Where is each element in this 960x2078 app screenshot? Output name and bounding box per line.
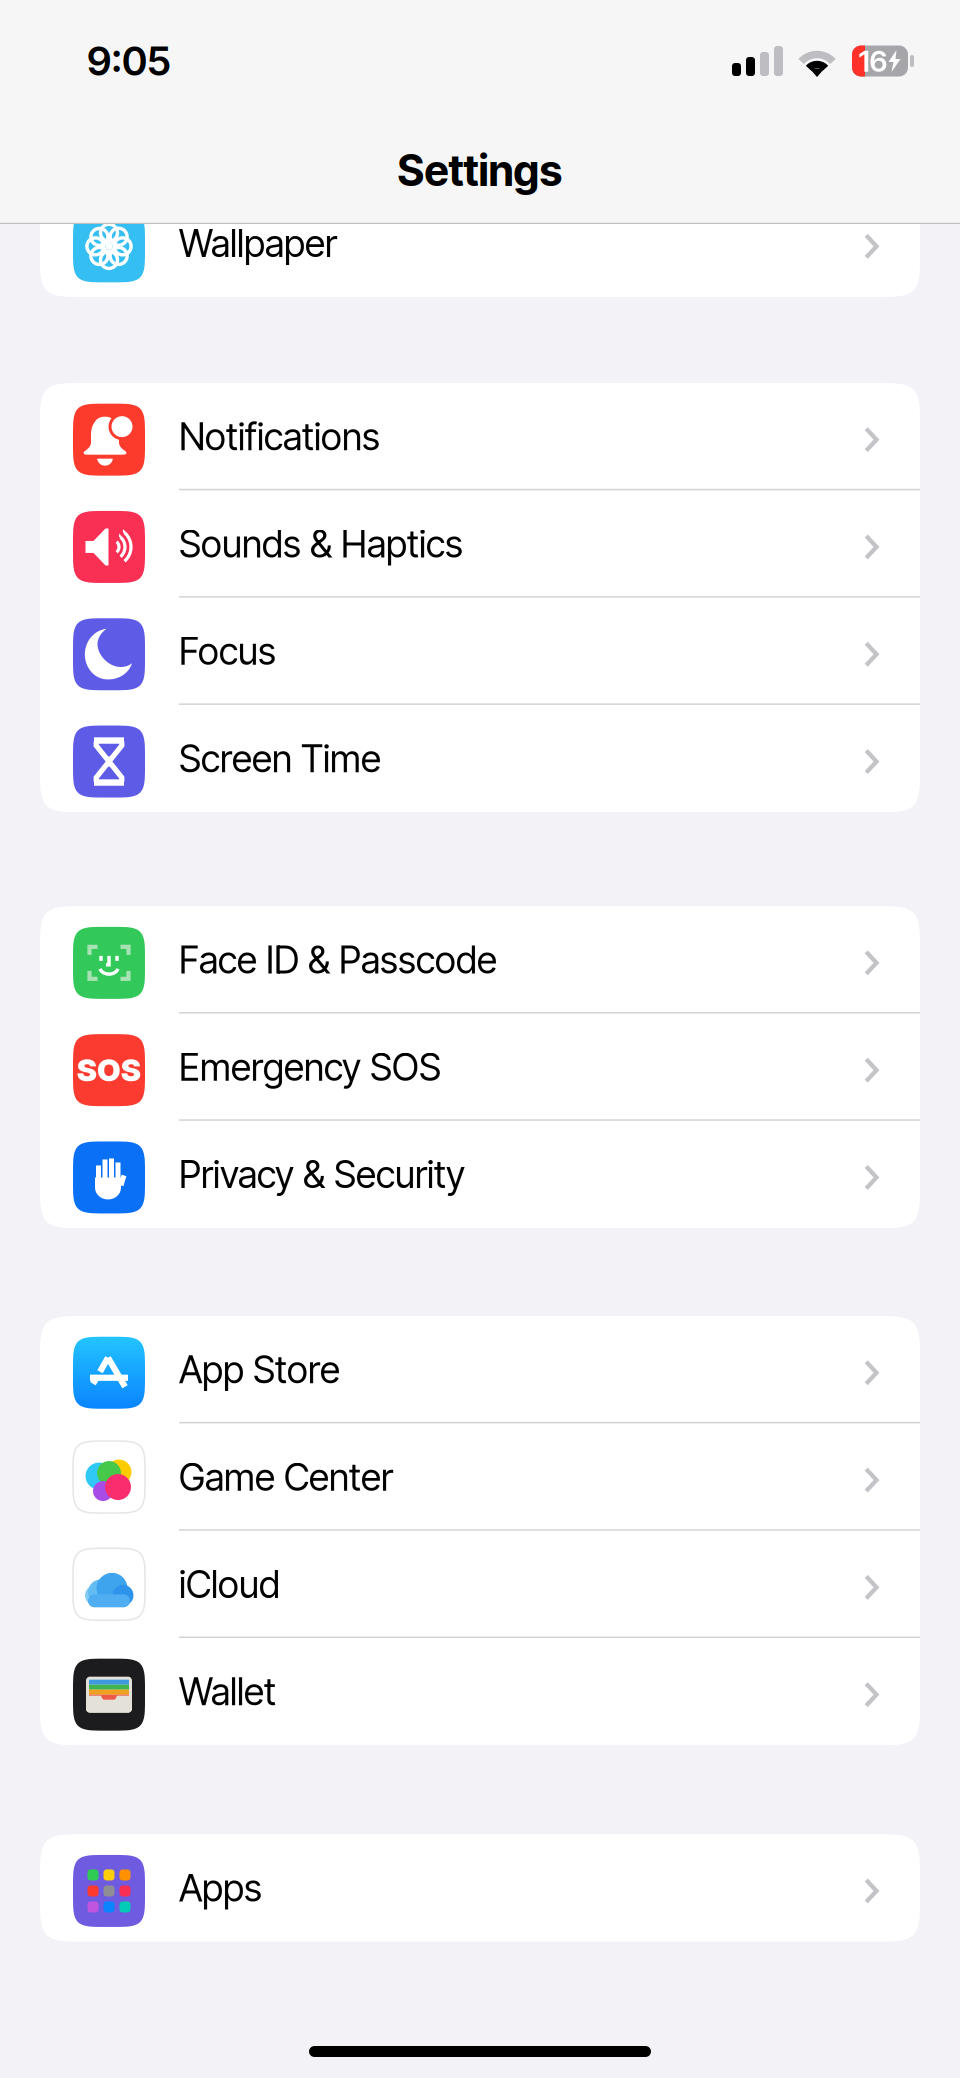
button[interactable]: Settings <box>0 122 960 219</box>
button[interactable]: iCloud <box>40 1531 920 1638</box>
staticText: Wallpaper <box>179 221 337 265</box>
staticText: Focus <box>179 629 276 673</box>
button[interactable]: Game Center <box>40 1423 920 1531</box>
staticText: Privacy & Security <box>179 1152 465 1196</box>
staticText: Apps <box>179 1866 262 1910</box>
staticText: Emergency SOS <box>179 1045 441 1089</box>
staticText: 16 <box>858 44 887 78</box>
button[interactable]: Apps <box>40 1834 920 1942</box>
button[interactable]: Sounds & Haptics <box>40 490 920 598</box>
button[interactable]: App Store <box>40 1316 920 1423</box>
button[interactable]: Notifications <box>40 383 920 490</box>
staticText: Settings <box>397 145 562 196</box>
staticText: Game Center <box>179 1455 393 1499</box>
staticText: Sounds & Haptics <box>179 522 463 566</box>
staticText: Notifications <box>179 415 380 459</box>
staticText: iCloud <box>179 1562 280 1606</box>
staticText: SOS <box>77 1052 141 1088</box>
staticText: Face ID & Passcode <box>179 938 497 982</box>
staticText: Screen Time <box>179 736 381 780</box>
button[interactable]: Face ID & Passcode <box>40 906 920 1013</box>
button[interactable]: SOS <box>40 1013 920 1121</box>
button[interactable]: Focus <box>40 598 920 705</box>
staticText: Wallet <box>179 1670 276 1714</box>
button[interactable]: Wallpaper <box>40 190 920 297</box>
button[interactable]: Privacy & Security <box>40 1121 920 1228</box>
staticText: 9:05 <box>87 37 171 85</box>
staticText: App Store <box>179 1348 340 1392</box>
button[interactable]: Wallet <box>40 1638 920 1745</box>
button[interactable]: Screen Time <box>40 705 920 812</box>
